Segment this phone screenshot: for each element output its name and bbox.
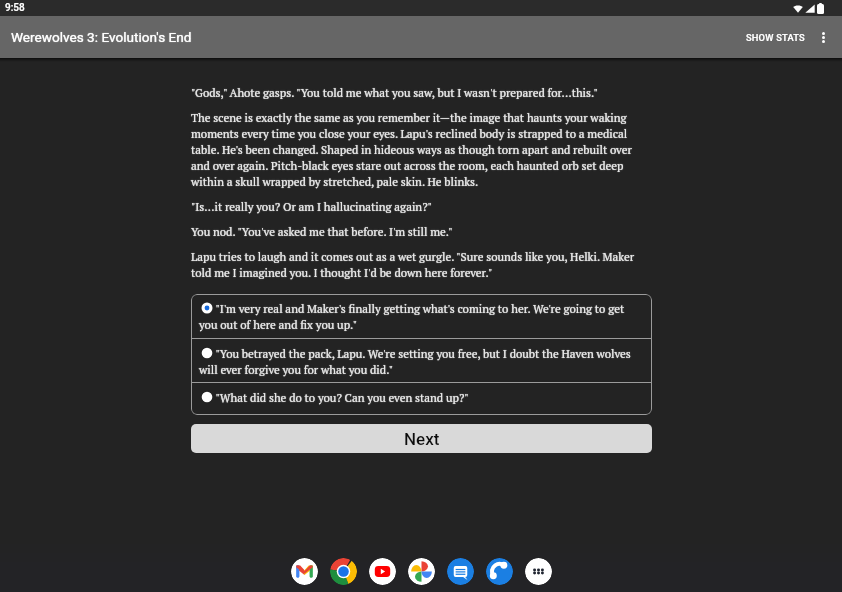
staticText: "You betrayed the pack, Lapu. We're sett… bbox=[199, 346, 642, 378]
staticText: You nod. "You've asked me that before. I… bbox=[191, 224, 453, 240]
staticText: 9:58 bbox=[5, 2, 25, 14]
button[interactable]: Messages bbox=[447, 558, 474, 585]
button[interactable]: "You betrayed the pack, Lapu. We're sett… bbox=[191, 339, 652, 382]
button[interactable]: More options bbox=[807, 21, 839, 53]
staticText: Next bbox=[404, 429, 440, 449]
staticText: "Is...it really you? Or am I hallucinati… bbox=[191, 199, 432, 215]
staticText: "Gods," Ahote gasps. "You told me what y… bbox=[191, 85, 598, 101]
button[interactable]: "What did she do to you? Can you even st… bbox=[191, 383, 652, 415]
staticText: Werewolves 3: Evolution's End bbox=[11, 29, 192, 45]
staticText: "I'm very real and Maker's finally getti… bbox=[199, 301, 642, 333]
staticText: Lapu tries to laugh and it comes out as … bbox=[191, 249, 652, 281]
staticText: The scene is exactly the same as you rem… bbox=[191, 110, 652, 190]
button[interactable]: "I'm very real and Maker's finally getti… bbox=[191, 294, 652, 338]
button[interactable]: SHOW STATS bbox=[734, 22, 807, 53]
button[interactable]: Next bbox=[191, 424, 652, 453]
button[interactable]: Phone bbox=[486, 558, 513, 585]
button[interactable]: Gmail bbox=[291, 558, 318, 585]
button[interactable]: Photos bbox=[408, 558, 435, 585]
button[interactable]: Chrome bbox=[330, 558, 357, 585]
staticText: SHOW STATS bbox=[746, 32, 805, 43]
button[interactable]: YouTube bbox=[369, 558, 396, 585]
button[interactable]: All apps bbox=[525, 558, 552, 585]
staticText: "What did she do to you? Can you even st… bbox=[199, 390, 642, 406]
